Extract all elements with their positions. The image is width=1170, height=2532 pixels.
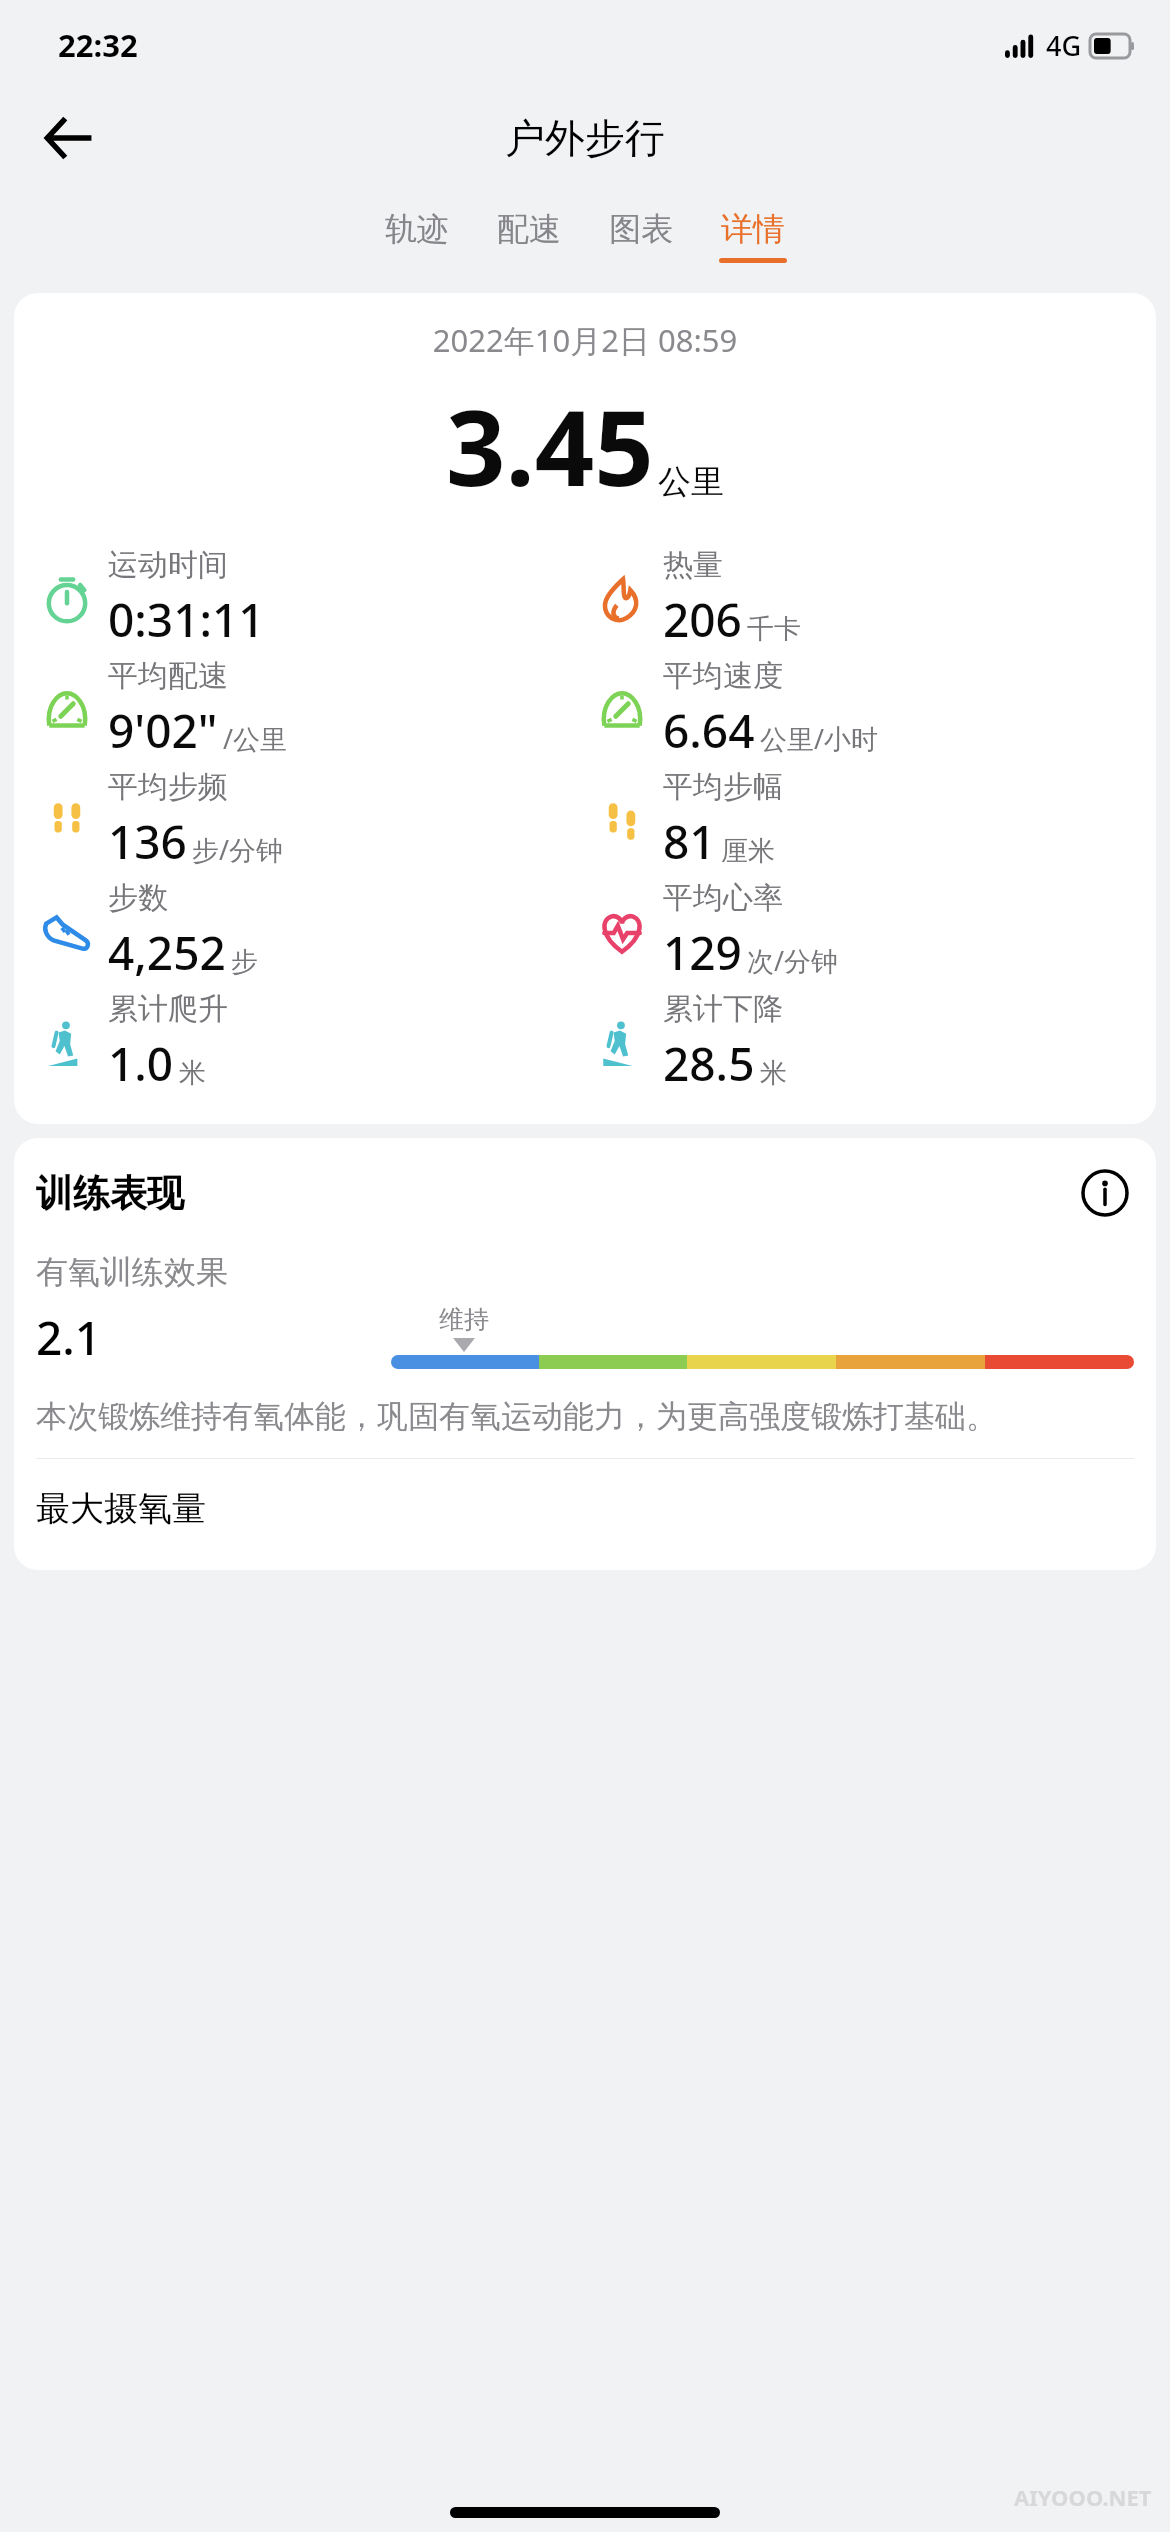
- staticText: 平均步幅: [663, 768, 783, 806]
- staticText: 6.64: [663, 699, 755, 762]
- staticText: 平均配速: [108, 657, 228, 695]
- staticText: 平均速度: [663, 657, 783, 695]
- staticText: 81: [663, 810, 716, 873]
- staticText: 3.45: [446, 375, 654, 517]
- button[interactable]: 轨迹: [361, 203, 473, 269]
- staticText: /公里: [223, 720, 288, 757]
- button[interactable]: Info: [1076, 1164, 1134, 1222]
- staticText: 有氧训练效果: [36, 1252, 228, 1292]
- staticText: 配速: [497, 209, 561, 249]
- staticText: 9'02": [108, 699, 218, 762]
- button[interactable]: 步数: [36, 876, 585, 987]
- staticText: 2022年10月2日 08:59: [14, 319, 1156, 361]
- staticText: 累计爬升: [108, 990, 228, 1028]
- staticText: 米: [760, 1056, 787, 1090]
- staticText: 28.5: [663, 1032, 755, 1095]
- staticText: 次/分钟: [747, 942, 839, 979]
- staticText: 维持: [439, 1304, 489, 1335]
- button[interactable]: 配速: [473, 203, 585, 269]
- staticText: 千卡: [747, 612, 801, 646]
- staticText: 热量: [663, 546, 723, 584]
- button[interactable]: 图表: [585, 203, 697, 269]
- staticText: 0:31:11: [108, 588, 265, 651]
- staticText: 1.0: [108, 1032, 174, 1095]
- staticText: 4G: [1046, 27, 1082, 64]
- staticText: 步: [231, 945, 258, 979]
- staticText: 公里: [658, 461, 724, 503]
- staticText: 轨迹: [385, 209, 449, 249]
- button[interactable]: 累计爬升: [36, 987, 585, 1098]
- staticText: 平均心率: [663, 879, 783, 917]
- button[interactable]: 平均步频: [36, 765, 585, 876]
- button[interactable]: 平均步幅: [591, 765, 1156, 876]
- button[interactable]: 平均配速: [36, 654, 585, 765]
- button[interactable]: 详情: [697, 203, 809, 269]
- staticText: 2.1: [36, 1306, 102, 1369]
- staticText: 米: [179, 1056, 206, 1090]
- staticText: 图表: [609, 209, 673, 249]
- staticText: 136: [108, 810, 187, 873]
- button[interactable]: 运动时间: [36, 543, 585, 654]
- button[interactable]: 累计下降: [591, 987, 1156, 1098]
- button[interactable]: 平均心率: [591, 876, 1156, 987]
- staticText: 运动时间: [108, 546, 228, 584]
- staticText: 4,252: [108, 921, 226, 984]
- button[interactable]: 平均速度: [591, 654, 1156, 765]
- staticText: 步数: [108, 879, 168, 917]
- staticText: 公里/小时: [760, 720, 879, 757]
- button[interactable]: 热量: [591, 543, 1156, 654]
- staticText: 平均步频: [108, 768, 228, 806]
- button[interactable]: Back: [28, 98, 108, 178]
- staticText: 本次锻炼维持有氧体能，巩固有氧运动能力，为更高强度锻炼打基础。: [36, 1397, 997, 1436]
- staticText: 206: [663, 588, 742, 651]
- staticText: 最大摄氧量: [36, 1487, 206, 1530]
- staticText: 累计下降: [663, 990, 783, 1028]
- staticText: AIYOOO.NET: [1014, 2482, 1152, 2512]
- staticText: 129: [663, 921, 742, 984]
- staticText: 训练表现: [36, 1170, 184, 1217]
- staticText: 22:32: [58, 24, 138, 66]
- staticText: 步/分钟: [192, 831, 284, 868]
- staticText: 详情: [721, 209, 785, 249]
- staticText: 户外步行: [505, 113, 665, 163]
- staticText: 厘米: [721, 834, 775, 868]
